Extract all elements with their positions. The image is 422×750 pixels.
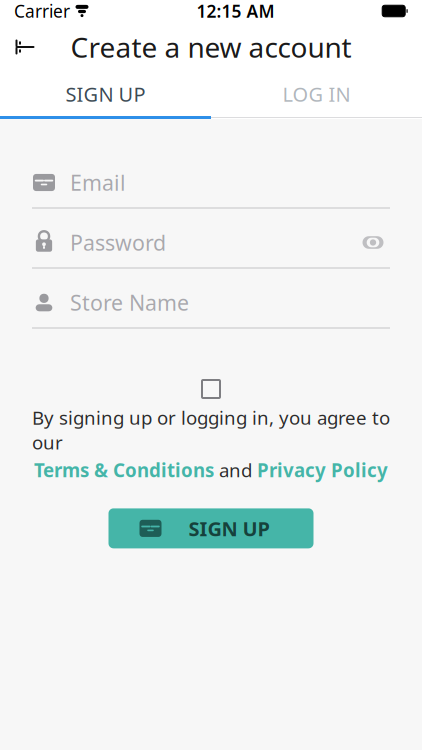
staticText: Password [70,228,166,257]
button[interactable]: SIGN UP [0,72,211,116]
staticText: SIGN UP [65,81,145,107]
staticText: 12:15 AM [197,0,275,22]
staticText: Create a new account [70,28,351,66]
staticText: SIGN UP [188,515,269,542]
staticText: Terms & Conditions [34,458,214,482]
staticText: By signing up or logging in, you agree t… [32,405,390,455]
button[interactable]: LOG IN [211,72,422,116]
staticText: and [219,458,252,482]
staticText: Store Name [70,288,189,317]
staticText: Carrier [14,0,70,22]
staticText: Email [70,168,126,197]
staticText: LOG IN [282,81,350,107]
button[interactable]: Back [3,25,47,69]
button[interactable]: Show password [356,225,390,259]
button[interactable]: SIGN UP [108,508,313,548]
button[interactable]: Privacy Policy [257,458,388,482]
button[interactable]: Terms & Conditions [34,458,214,482]
staticText: Privacy Policy [257,458,388,482]
button[interactable]: Agree to terms [191,375,231,403]
